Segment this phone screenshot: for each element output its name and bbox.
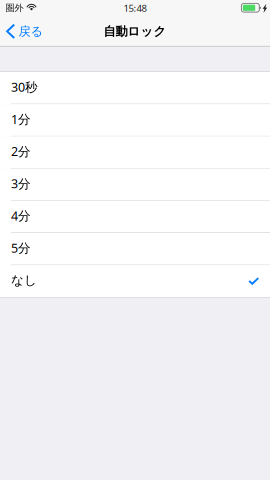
staticText: 5分 <box>11 239 31 256</box>
staticText: 自動ロック <box>103 24 166 39</box>
staticText: 3分 <box>11 175 31 192</box>
button[interactable]: 1分 <box>0 104 270 136</box>
button[interactable]: 2分 <box>0 136 270 169</box>
button[interactable]: 4分 <box>0 201 270 233</box>
staticText: なし <box>11 272 37 288</box>
button[interactable]: 戻る <box>0 17 51 46</box>
staticText: 4分 <box>11 207 31 224</box>
button[interactable]: なし <box>0 265 270 297</box>
staticText: 15:48 <box>123 1 146 15</box>
staticText: 1分 <box>11 110 31 128</box>
button[interactable]: 3分 <box>0 169 270 201</box>
staticText: 圏外 <box>5 2 23 14</box>
staticText: 30秒 <box>11 78 38 95</box>
button[interactable]: 30秒 <box>0 72 270 104</box>
button[interactable]: 5分 <box>0 233 270 265</box>
staticText: 戻る <box>18 24 43 39</box>
staticText: 2分 <box>11 143 31 160</box>
